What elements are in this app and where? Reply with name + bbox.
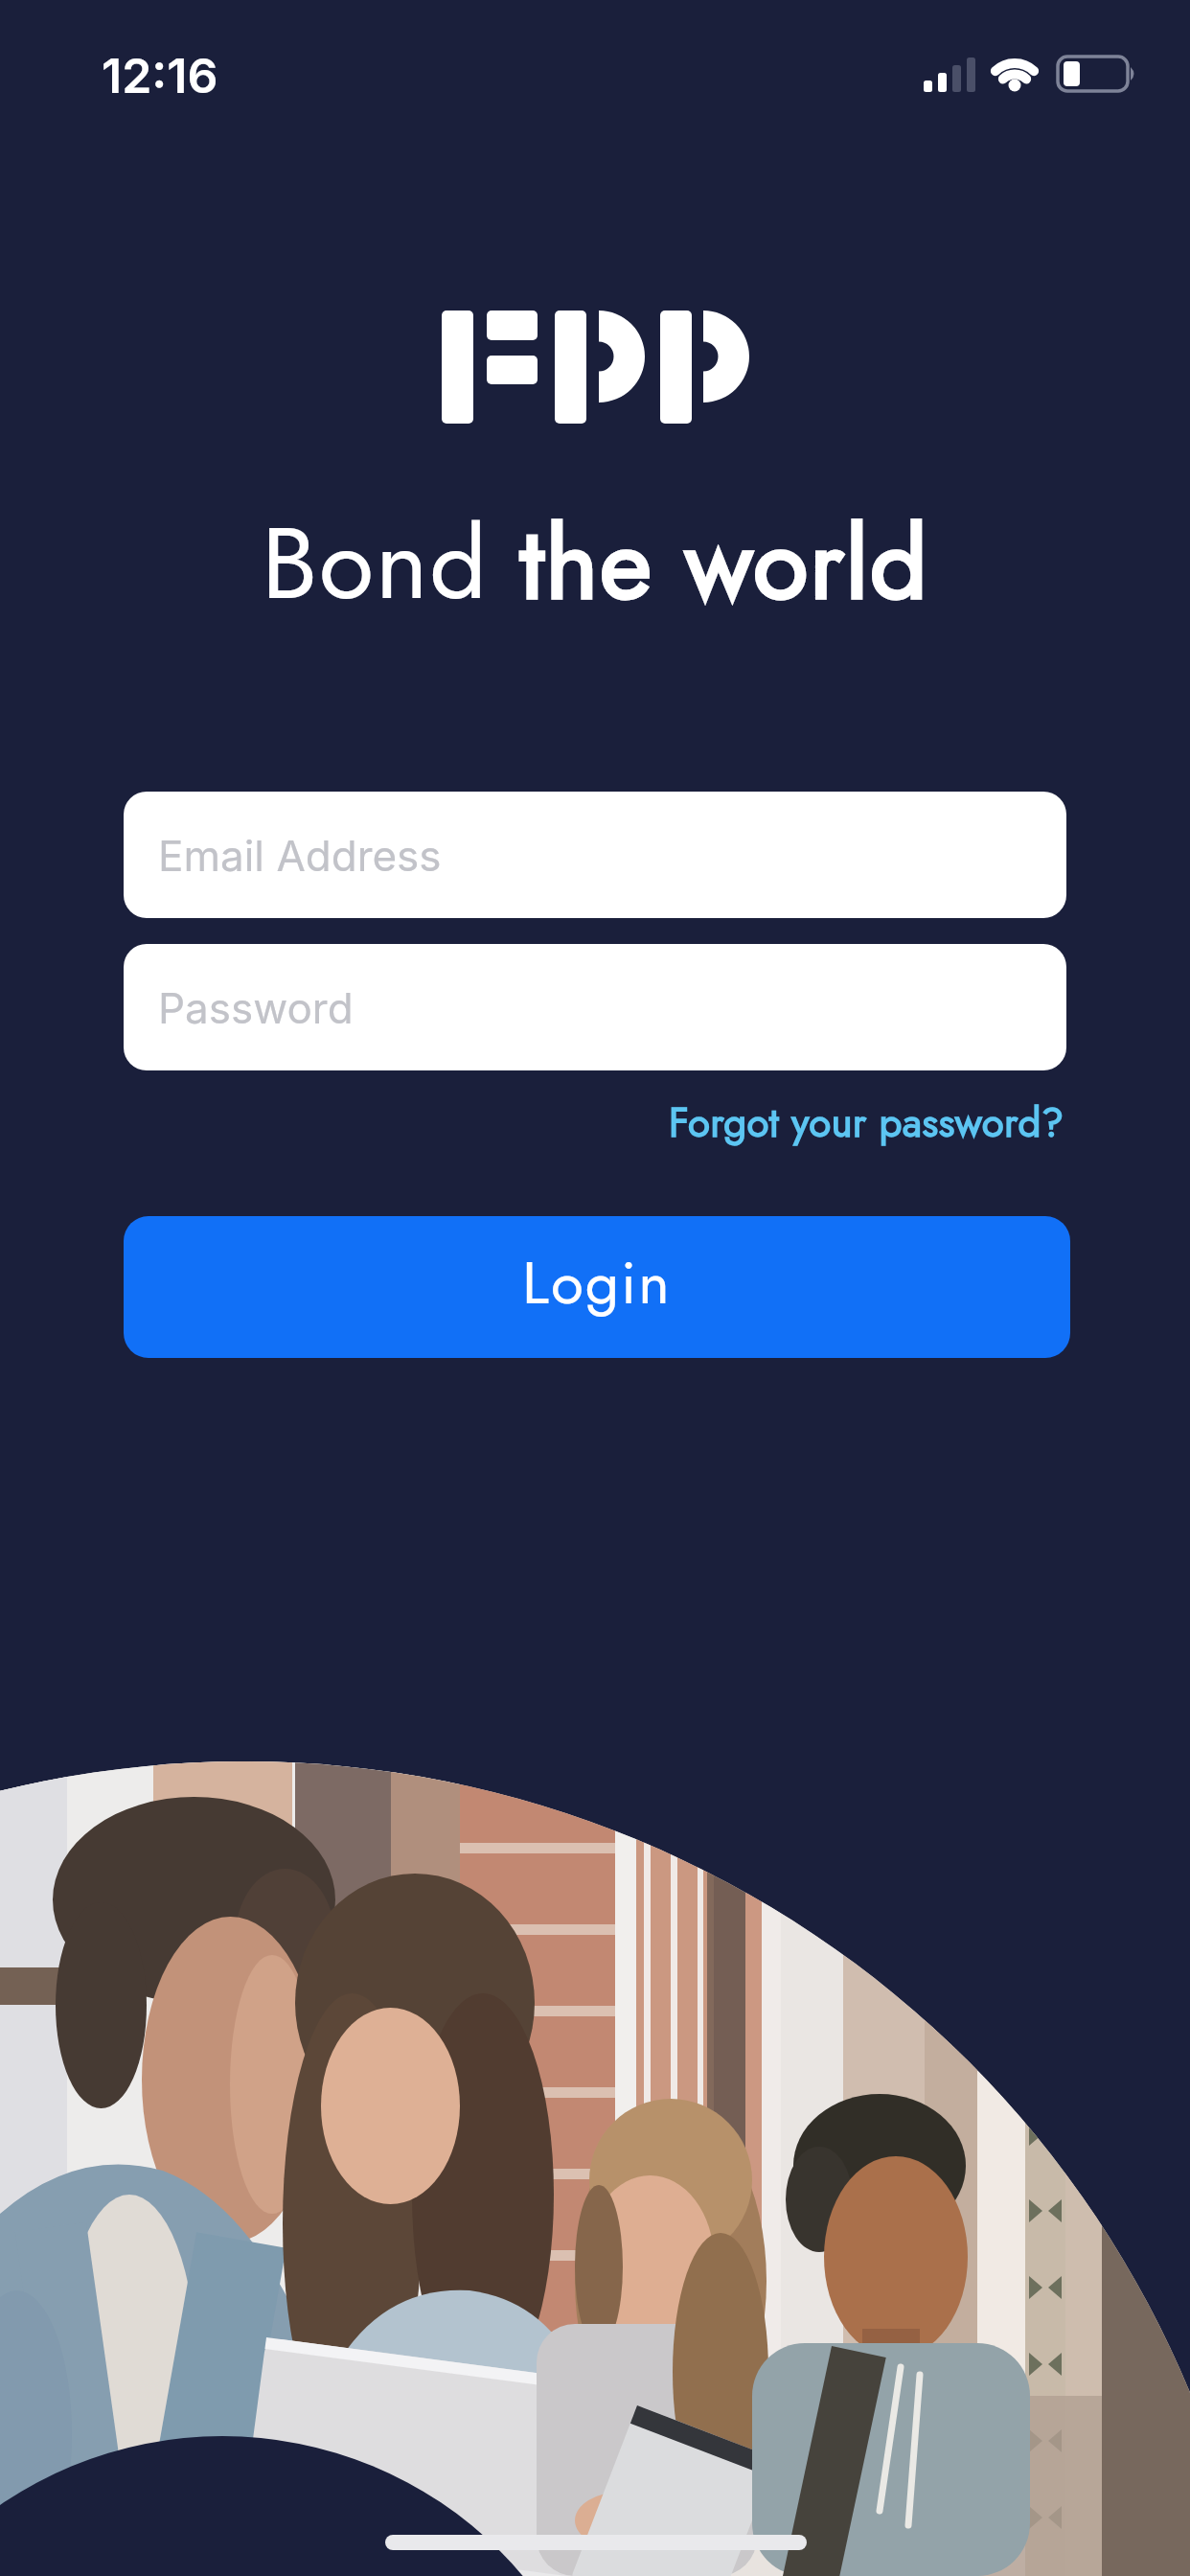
button[interactable]: Forgot your password? (669, 1093, 1064, 1152)
staticText: Bond the world (0, 491, 1190, 636)
staticText: Login (522, 1240, 672, 1326)
staticText: 12:16 (102, 47, 218, 104)
staticText: Email Address (158, 830, 442, 881)
staticText: Forgot your password? (669, 1093, 1064, 1152)
staticText: Password (158, 982, 354, 1033)
button[interactable]: Password (124, 944, 1066, 1070)
button[interactable]: Email Address (124, 792, 1066, 918)
button[interactable]: Login (124, 1216, 1070, 1358)
